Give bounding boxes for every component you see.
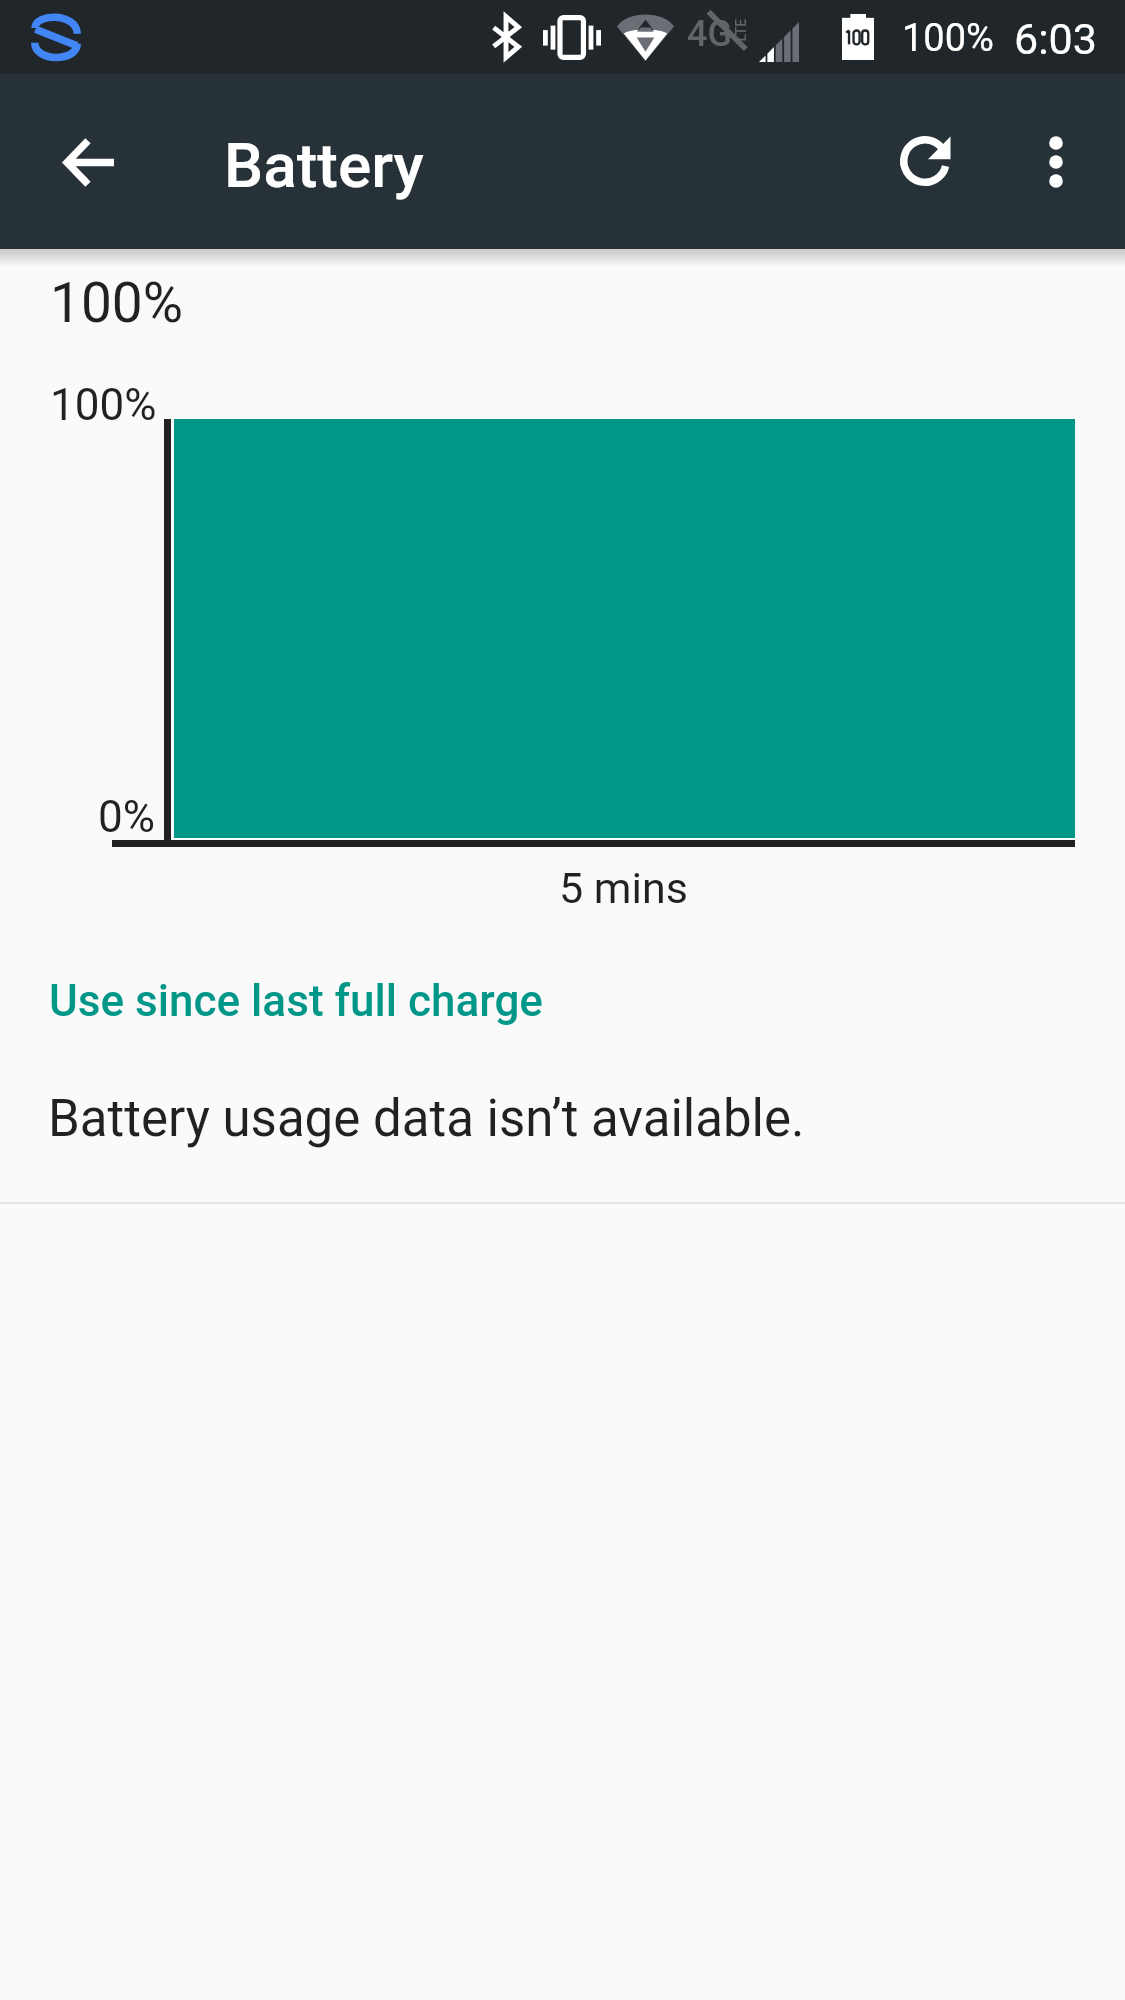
staticText: 6:03 [1014, 14, 1097, 64]
button[interactable]: Refresh [876, 112, 976, 212]
staticText: Battery [224, 129, 424, 202]
staticText: 5 mins [559, 863, 688, 913]
staticText: Use since last full charge [49, 975, 543, 1027]
staticText: 100% [50, 379, 157, 431]
button[interactable]: Navigate up [40, 122, 136, 218]
staticText: 100% [50, 271, 184, 335]
button[interactable]: More options [1006, 112, 1106, 212]
staticText: 0% [98, 791, 155, 843]
staticText: LTE [732, 18, 748, 41]
staticText: Battery usage data isn’t available. [48, 1089, 805, 1149]
staticText: 100% [902, 16, 994, 61]
staticText: 4G [687, 13, 732, 55]
